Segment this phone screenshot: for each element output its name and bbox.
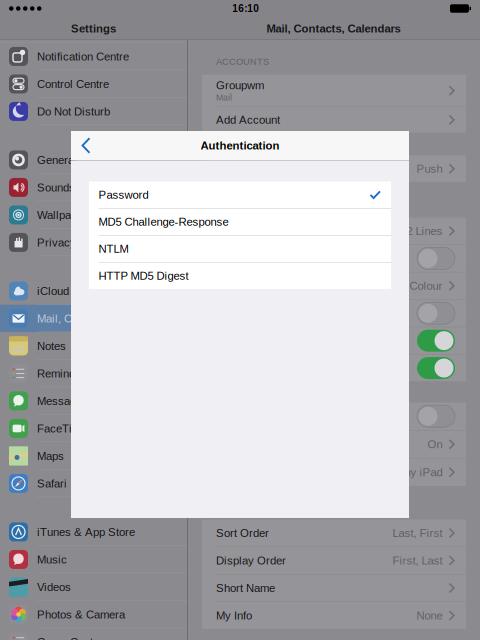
staticText: Wallpapers & Brightness [37,209,161,221]
staticText: My Info [216,609,252,622]
button[interactable]: Notes [0,332,187,360]
staticText: HTTP MD5 Digest [98,269,188,282]
button[interactable]: iTunes & App Store [0,518,187,546]
button[interactable]: Toggle [417,302,455,324]
staticText: MD5 Challenge-Response [98,215,228,228]
staticText: MAIL [216,199,238,210]
button[interactable]: General [0,146,187,174]
staticText: Short Name [216,582,275,594]
staticText: Notes [37,340,66,352]
staticText: Safari [37,477,67,490]
button[interactable]: My Info [202,602,466,629]
staticText: FaceTime [37,422,87,435]
button[interactable]: Do Not Disturb [0,98,187,125]
button[interactable]: Safari [0,470,187,497]
button[interactable]: MD5 Challenge-Response [89,208,391,235]
button[interactable]: HTTP MD5 Digest [89,262,391,289]
staticText: Game Center [37,636,103,640]
staticText: Show To/Cc Label [216,252,306,265]
staticText: Display Order [216,554,286,567]
staticText: Do Not Disturb [37,105,110,118]
staticText: Mail [216,93,232,102]
button[interactable]: Sounds [0,174,187,201]
staticText: 16:10 [232,3,259,14]
button[interactable]: Wallpapers & Brightness [0,201,187,229]
button[interactable]: Notification Centre [0,43,187,70]
button[interactable]: Toggle [417,330,455,352]
button[interactable]: FaceTime [0,415,187,442]
staticText: First, Last [392,554,442,567]
staticText: Last, First [392,527,442,539]
staticText: Notification Centre [37,50,129,63]
button[interactable]: Reminders [0,360,187,387]
button[interactable]: Photos & Camera [0,601,187,628]
staticText: Colour [409,279,442,292]
staticText: NTLM [98,242,128,255]
staticText: Control Centre [37,78,109,90]
staticText: Sent from my iPad [350,466,442,479]
button[interactable]: Sort Order [202,519,466,546]
staticText: Reminders [37,367,91,380]
button[interactable]: Add Account [202,107,466,133]
button[interactable]: Control Centre [0,70,187,98]
staticText: Sounds [37,181,75,194]
button[interactable]: Increase Quote Level [202,430,466,458]
staticText: Password [98,188,148,201]
staticText: Groupwm [216,79,264,92]
staticText: On [427,438,442,451]
button[interactable]: NTLM [89,235,391,262]
button[interactable]: Fetch New Data [202,155,466,182]
staticText: 2 Lines [406,225,442,237]
button[interactable]: Groupwm [202,75,466,106]
staticText: Mail, Contacts, Calendars [37,312,165,325]
staticText: Preview [216,225,257,237]
staticText: Settings [71,22,116,35]
button[interactable]: Password [89,181,391,208]
button[interactable]: Short Name [202,574,466,601]
staticText: Photos & Camera [37,608,125,621]
staticText: Music [37,553,67,566]
staticText: Privacy [37,236,76,249]
staticText: Maps [37,450,64,462]
button[interactable]: Toggle [417,357,455,379]
button[interactable]: Privacy [0,229,187,256]
staticText: Sort Order [216,527,269,539]
button[interactable]: Preview [202,218,466,244]
staticText: Flag Style [216,279,267,292]
button[interactable]: Game Center [0,628,187,640]
staticText: Mail, Contacts, Calendars [266,22,400,35]
staticText: Videos [37,581,71,593]
button[interactable]: Toggle [417,405,455,427]
button[interactable]: Display Order [202,547,466,574]
staticText: iCloud [37,285,69,297]
staticText: General [37,154,77,166]
button[interactable]: Back [71,131,101,160]
staticText: Authentication [200,139,279,152]
staticText: Push [416,162,442,175]
button[interactable]: Flag Style [202,272,466,299]
staticText: iTunes & App Store [37,526,135,538]
button[interactable]: iCloud [0,277,187,305]
button[interactable]: Music [0,546,187,573]
button[interactable]: Messages [0,387,187,415]
button[interactable]: Toggle [417,247,455,269]
staticText: Add Account [216,114,280,126]
staticText: Messages [37,395,88,407]
button[interactable]: Mail, Contacts, Calendars [0,305,187,332]
staticText: None [416,609,442,622]
button[interactable]: Maps [0,442,187,470]
button[interactable]: Videos [0,573,187,601]
button[interactable]: Signature [202,458,466,486]
staticText: ACCOUNTS [216,56,269,67]
